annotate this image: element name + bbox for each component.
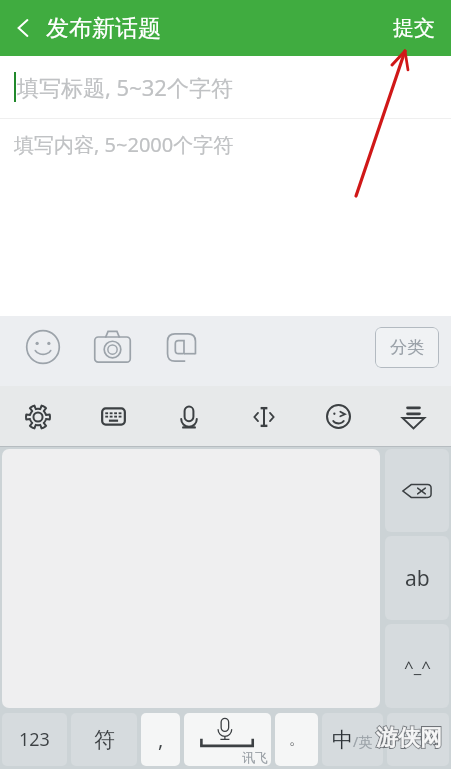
button[interactable]: 填写内容, 5~2000个字符 (0, 119, 451, 315)
staticText: 讯飞 (242, 749, 268, 765)
staticText: 123 (19, 727, 50, 752)
button[interactable]: Settings (0, 386, 76, 447)
staticText: 分类 (390, 337, 424, 358)
button[interactable]: 提交 (377, 0, 451, 56)
button[interactable]: Emoticons (301, 386, 376, 447)
staticText: ^_^ (404, 655, 431, 678)
staticText: 符 (94, 727, 115, 753)
staticText: 游侠网 (376, 724, 442, 752)
button[interactable]: Chinese English toggle (322, 713, 383, 766)
button[interactable]: ab (385, 536, 449, 620)
staticText: 中 (332, 727, 353, 753)
staticText: 发布新话题 (46, 14, 161, 43)
staticText: 。 (289, 730, 304, 749)
button[interactable]: Voice input (151, 386, 226, 447)
button[interactable]: Camera (90, 325, 134, 369)
staticText: , (158, 726, 164, 753)
button[interactable]: 分类 (375, 327, 439, 368)
button[interactable]: Back (0, 0, 46, 56)
button[interactable]: Hide keyboard (376, 386, 451, 447)
staticText: 填写内容, 5~2000个字符 (14, 131, 234, 158)
button[interactable]: , (141, 713, 180, 766)
staticText: 游侠网 (376, 724, 442, 752)
button[interactable]: Space (184, 713, 271, 766)
button[interactable]: 。 (275, 713, 318, 766)
staticText: ab (405, 564, 430, 593)
button[interactable]: ^_^ (385, 624, 449, 708)
staticText: 填写标题, 5~32个字符 (17, 72, 233, 102)
button[interactable]: Move cursor (226, 386, 301, 447)
button[interactable] (387, 713, 449, 766)
button[interactable]: Backspace (385, 449, 449, 532)
button[interactable]: Keyboard (76, 386, 151, 447)
button[interactable]: 填写标题, 5~32个字符 (0, 56, 451, 118)
staticText: /英 (353, 732, 373, 751)
button[interactable]: 符 (71, 713, 137, 766)
button[interactable]: Emoji (21, 325, 65, 369)
button[interactable]: 123 (2, 713, 67, 766)
button[interactable]: Mention (159, 325, 203, 369)
staticText: 提交 (393, 15, 435, 41)
